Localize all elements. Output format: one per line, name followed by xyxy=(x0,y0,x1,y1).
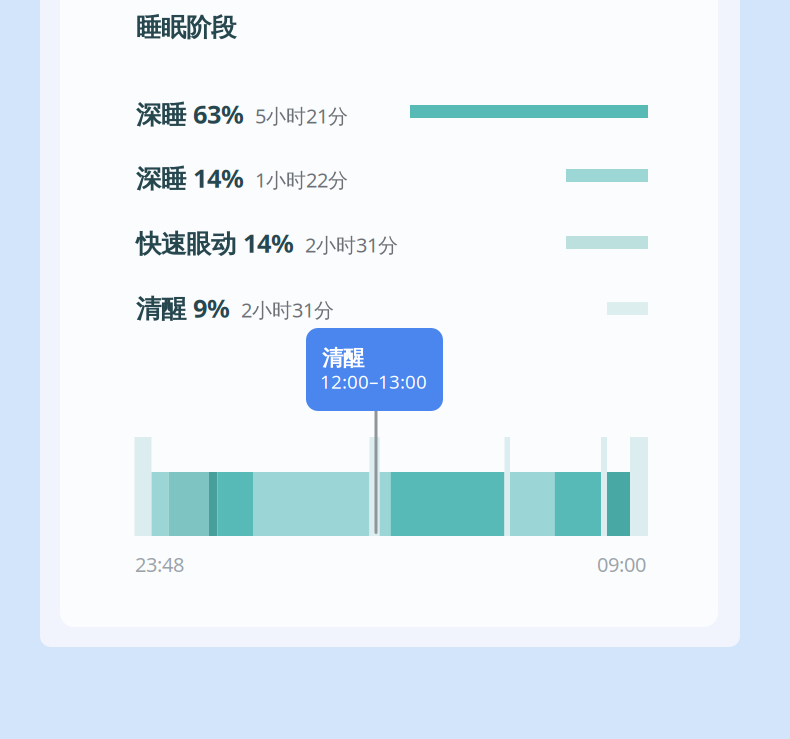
staticText: 2小时31分 xyxy=(241,296,334,323)
staticText: 23:48 xyxy=(135,551,184,578)
button[interactable]: 清醒 xyxy=(306,328,443,411)
staticText: 12:00–13:00 xyxy=(320,369,427,394)
button[interactable]: 深睡 14% xyxy=(0,165,790,199)
staticText: 深睡 14% xyxy=(136,161,244,195)
button[interactable]: 深睡 63% xyxy=(0,101,790,135)
button[interactable]: 快速眼动 14% xyxy=(0,230,790,264)
staticText: 5小时21分 xyxy=(255,102,348,129)
staticText: 深睡 63% xyxy=(136,97,244,131)
staticText: 1小时22分 xyxy=(255,166,348,193)
staticText: 睡眠阶段 xyxy=(136,12,236,43)
button[interactable]: 清醒 9% xyxy=(0,295,790,329)
staticText: 09:00 xyxy=(597,551,646,578)
staticText: 清醒 xyxy=(322,345,364,371)
staticText: 快速眼动 14% xyxy=(136,226,294,260)
staticText: 2小时31分 xyxy=(305,231,398,258)
staticText: 清醒 9% xyxy=(136,291,230,325)
